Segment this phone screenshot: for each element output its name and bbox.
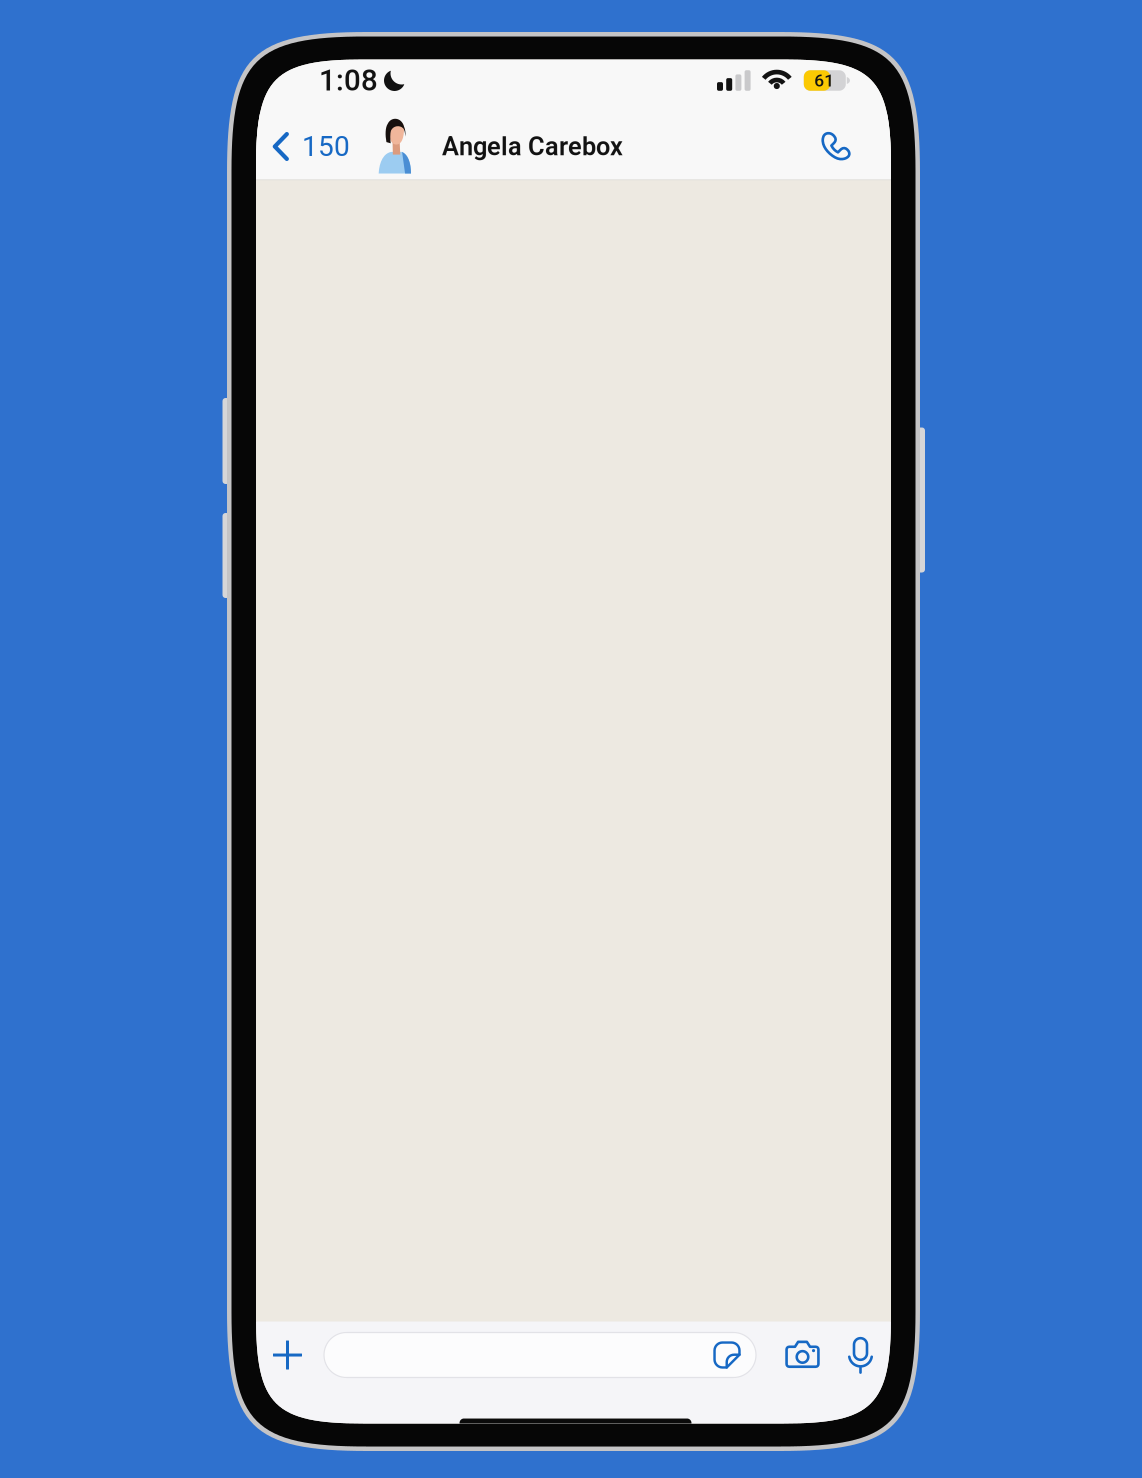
button[interactable]: Angela Carebox — [378, 112, 744, 180]
button[interactable]: Attach — [259, 1326, 316, 1383]
button[interactable]: Record voice message — [837, 1332, 884, 1377]
button[interactable]: Voice call — [803, 112, 869, 180]
button[interactable]: Camera — [775, 1332, 830, 1377]
staticText: 1:08 — [319, 63, 378, 98]
staticText: 61 — [814, 70, 834, 91]
staticText: Angela Carebox — [442, 132, 623, 161]
button[interactable]: 150 — [272, 112, 367, 180]
staticText: 150 — [302, 130, 350, 163]
button[interactable] — [324, 1332, 756, 1377]
